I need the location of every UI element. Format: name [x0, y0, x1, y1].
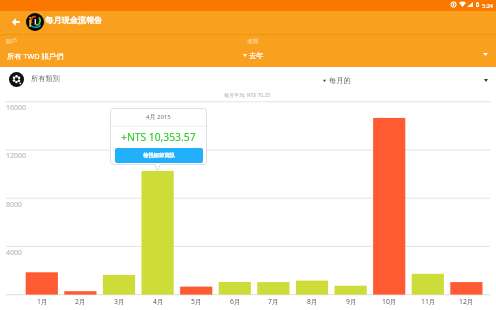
staticText: 12000	[6, 151, 27, 161]
staticText: 16000	[6, 103, 27, 113]
staticText: +NTS 10,353.57	[121, 130, 196, 144]
staticText: 8000	[6, 200, 23, 210]
staticText: 1月	[37, 297, 48, 306]
staticText: 週期	[247, 38, 259, 45]
staticText: 每月的	[329, 76, 351, 85]
staticText: 2月	[75, 297, 86, 306]
staticText: 每月平均: NT$ 70.25	[224, 92, 271, 99]
staticText: 所有 TWD 賬戶們	[7, 51, 64, 61]
staticText: 4月	[153, 297, 164, 306]
button[interactable]: Back	[6, 12, 26, 32]
staticText: 所有類別	[31, 74, 60, 83]
button[interactable]: 賬戶	[0, 34, 243, 67]
staticText: 5:24	[482, 2, 493, 9]
staticText: 12月	[459, 297, 474, 306]
staticText: 每月現金流報告	[45, 15, 103, 25]
button[interactable]: 檢視細節資訊	[115, 148, 203, 163]
staticText: 賬戶	[6, 38, 18, 45]
staticText: 11月	[421, 297, 436, 306]
staticText: 8月	[307, 297, 318, 306]
staticText: 4月 2015	[146, 113, 171, 121]
button[interactable]: 週期	[243, 34, 483, 67]
staticText: 7月	[268, 297, 279, 306]
staticText: 檢視細節資訊	[143, 152, 175, 159]
staticText: 4000	[6, 248, 23, 258]
staticText: 9月	[346, 297, 357, 306]
button[interactable]: 每月的	[318, 67, 378, 94]
staticText: 5月	[191, 297, 202, 306]
button[interactable]: 所有類別	[0, 67, 300, 94]
staticText: 10月	[382, 297, 397, 306]
staticText: 6月	[230, 297, 241, 306]
staticText: 去年	[249, 51, 264, 60]
staticText: 3月	[114, 297, 125, 306]
button[interactable]: Expand period	[483, 52, 488, 56]
button[interactable]: Expand interval	[484, 78, 488, 82]
